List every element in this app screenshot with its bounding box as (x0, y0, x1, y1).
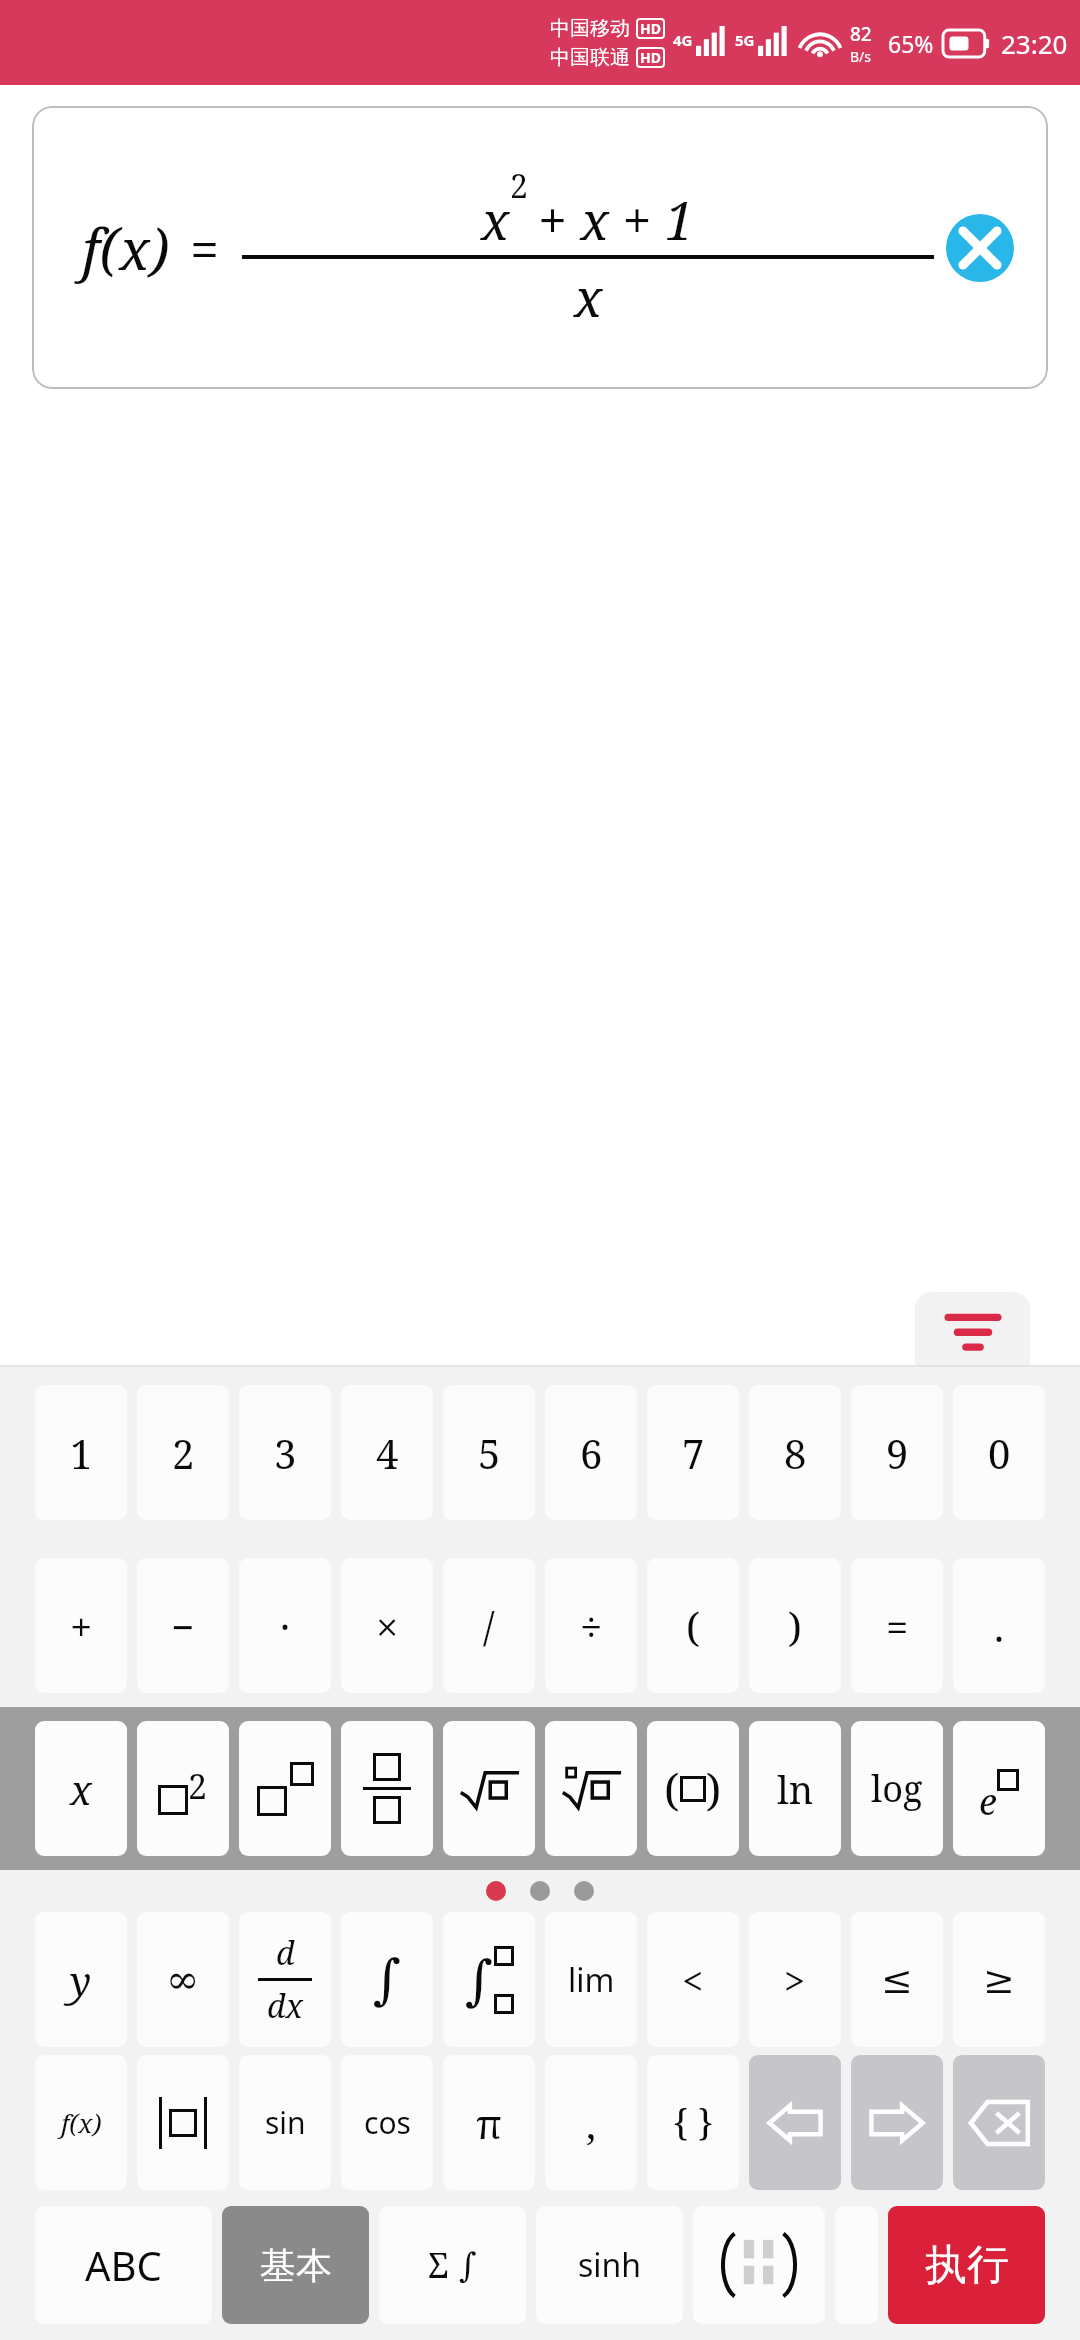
button[interactable]: 执行 (888, 2206, 1045, 2324)
button[interactable] (239, 1721, 331, 1856)
button[interactable]: 8 (749, 1385, 841, 1520)
button[interactable]: 7 (647, 1385, 739, 1520)
staticText: sinh (578, 2243, 642, 2287)
button[interactable]: d (239, 1912, 331, 2047)
button[interactable]: + (35, 1558, 127, 1693)
button[interactable]: 2 (137, 1721, 229, 1856)
staticText: 0 (988, 1426, 1011, 1480)
staticText: x (574, 261, 603, 332)
staticText: ln (777, 1763, 814, 1815)
button[interactable]: 5 (443, 1385, 535, 1520)
staticText: 4G (673, 30, 693, 50)
staticText: d (276, 1931, 295, 1975)
staticText: 82 (850, 21, 872, 47)
staticText: sin (265, 2102, 306, 2143)
button[interactable]: Move cursor right (851, 2055, 943, 2190)
button[interactable]: / (443, 1558, 535, 1693)
button[interactable]: Σ (379, 2206, 526, 2324)
staticText: dx (267, 1984, 304, 2028)
staticText: 23:20 (1001, 26, 1068, 61)
button[interactable]: log (851, 1721, 943, 1856)
staticText: ( (664, 1759, 680, 1819)
button[interactable]: ln (749, 1721, 841, 1856)
button[interactable]: ∞ (137, 1912, 229, 2047)
button[interactable]: , (545, 2055, 637, 2190)
staticText: > (784, 1954, 806, 2006)
button[interactable]: ) (749, 1558, 841, 1693)
staticText: 2 (510, 164, 528, 208)
staticText: 65% (888, 28, 934, 59)
staticText: . (994, 1599, 1004, 1653)
staticText: < (682, 1954, 704, 2006)
button[interactable]: f(x) (32, 106, 1048, 389)
button[interactable] (545, 1721, 637, 1856)
staticText: 中国联通 (550, 45, 630, 70)
staticText: y (70, 1953, 92, 2007)
button[interactable]: Move cursor left (749, 2055, 841, 2190)
button[interactable]: . (953, 1558, 1045, 1693)
staticText: + x + 1 (538, 184, 695, 255)
button[interactable]: 4 (341, 1385, 433, 1520)
button[interactable]: · (239, 1558, 331, 1693)
button[interactable] (443, 1721, 535, 1856)
button[interactable]: cos (341, 2055, 433, 2190)
button[interactable]: f(x) (35, 2055, 127, 2190)
button[interactable]: lim (545, 1912, 637, 2047)
staticText: f(x) (82, 210, 170, 286)
staticText: / (483, 1599, 495, 1653)
staticText: − (171, 1599, 195, 1653)
button[interactable]: 基本 (222, 2206, 369, 2324)
button[interactable]: sin (239, 2055, 331, 2190)
button[interactable]: 3 (239, 1385, 331, 1520)
button[interactable]: e (953, 1721, 1045, 1856)
staticText: 8 (784, 1426, 807, 1480)
button[interactable]: ≤ (851, 1912, 943, 2047)
button[interactable]: ∫ (443, 1912, 535, 2047)
button[interactable]: × (341, 1558, 433, 1693)
button[interactable] (137, 2055, 229, 2190)
button[interactable]: 9 (851, 1385, 943, 1520)
button[interactable]: 0 (953, 1385, 1045, 1520)
button[interactable]: y (35, 1912, 127, 2047)
staticText: , (586, 2096, 596, 2150)
staticText: ≥ (983, 1958, 1015, 2002)
staticText: x (70, 1762, 92, 1816)
button[interactable]: Backspace (953, 2055, 1045, 2190)
button[interactable]: − (137, 1558, 229, 1693)
staticText: = (886, 1599, 909, 1653)
staticText: x (481, 184, 510, 255)
button[interactable]: ( (647, 1721, 739, 1856)
button[interactable]: Collapse keyboard (915, 1292, 1030, 1365)
button[interactable] (341, 1721, 433, 1856)
staticText: π (476, 2096, 502, 2150)
button[interactable]: > (749, 1912, 841, 2047)
staticText: 3 (274, 1426, 297, 1480)
button[interactable]: ≥ (953, 1912, 1045, 2047)
staticText: ∫ (465, 1949, 494, 2012)
button[interactable]: π (443, 2055, 535, 2190)
staticText: 中国移动 (550, 16, 630, 41)
button[interactable]: ( (647, 1558, 739, 1693)
button[interactable]: ∫ (341, 1912, 433, 2047)
button[interactable]: sinh (536, 2206, 683, 2324)
staticText: 9 (886, 1426, 909, 1480)
staticText: B/s (850, 47, 872, 66)
button[interactable]: { } (647, 2055, 739, 2190)
staticText: ∫ (459, 2245, 477, 2285)
button[interactable]: ÷ (545, 1558, 637, 1693)
button[interactable]: x (35, 1721, 127, 1856)
staticText: e (979, 1777, 997, 1826)
button[interactable]: Clear expression (934, 202, 1026, 294)
staticText: 7 (682, 1426, 705, 1480)
staticText: × (376, 1599, 399, 1653)
button[interactable]: ABC (35, 2206, 212, 2324)
button[interactable]: Matrix (693, 2206, 825, 2324)
button[interactable]: < (647, 1912, 739, 2047)
button[interactable]: 6 (545, 1385, 637, 1520)
button[interactable]: 2 (137, 1385, 229, 1520)
button[interactable]: 1 (35, 1385, 127, 1520)
button[interactable]: = (851, 1558, 943, 1693)
staticText: HD (640, 19, 661, 38)
staticText: 2 (188, 1763, 208, 1809)
